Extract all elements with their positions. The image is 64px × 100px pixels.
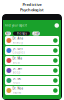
staticText: Stress xyxy=(13,61,20,64)
staticText: Anxiety xyxy=(13,41,23,44)
button[interactable]: Dr. Luis xyxy=(5,46,59,55)
button[interactable]: Dr. Eve xyxy=(5,76,59,85)
staticText: Trauma xyxy=(13,91,21,94)
staticText: Dr. Luis xyxy=(13,47,23,50)
staticText: Predictive xyxy=(22,2,41,7)
staticText: Dr. Mia xyxy=(13,57,22,60)
button[interactable]: Coach xyxy=(32,31,40,35)
staticText: Dr. Eve xyxy=(13,77,22,80)
staticText: Therapy xyxy=(16,32,26,35)
button[interactable]: Dr. Mia xyxy=(5,56,59,65)
staticText: Dr. Ana xyxy=(13,37,23,40)
staticText: Find your expert xyxy=(5,24,27,27)
button[interactable]: Dr. Ana xyxy=(5,36,59,45)
staticText: Focus xyxy=(13,81,20,84)
staticText: Sleep xyxy=(13,71,21,74)
button[interactable]: Dr. Noa xyxy=(5,86,59,95)
staticText: Couples xyxy=(13,51,25,54)
staticText: All xyxy=(6,32,10,35)
button[interactable]: Therapy xyxy=(13,31,30,35)
staticText: Dr. Sam xyxy=(13,67,22,70)
staticText: Psychologist xyxy=(20,7,44,12)
button[interactable]: Dr. Sam xyxy=(5,66,59,75)
button[interactable]: All xyxy=(5,31,11,35)
staticText: Dr. Noa xyxy=(13,87,23,90)
staticText: Coach xyxy=(32,32,40,35)
